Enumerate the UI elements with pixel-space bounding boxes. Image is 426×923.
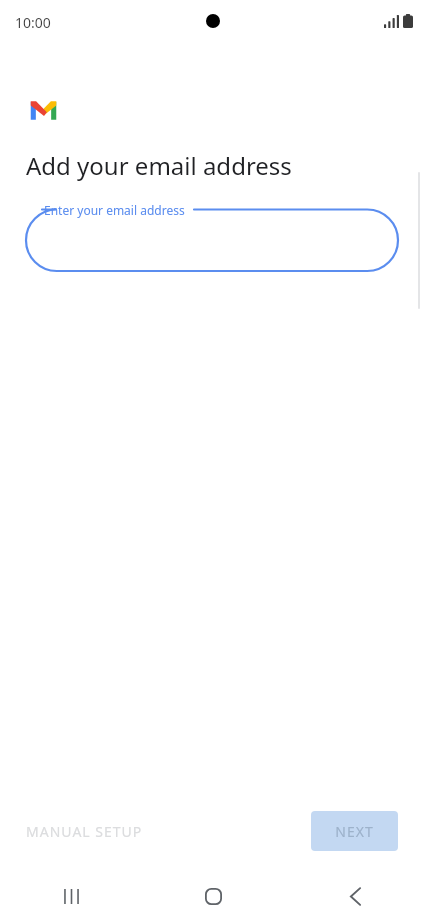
staticText: MANUAL SETUP: [26, 822, 143, 841]
button[interactable]: Recents: [0, 870, 142, 923]
button[interactable]: Back: [284, 870, 426, 923]
staticText: NEXT: [335, 822, 374, 841]
staticText: Add your email address: [26, 149, 292, 182]
button[interactable]: MANUAL SETUP: [12, 813, 157, 850]
button[interactable]: Enter your email address: [26, 203, 398, 271]
button[interactable]: Home: [142, 870, 284, 923]
staticText: 10:00: [15, 13, 51, 32]
staticText: Enter your email address: [44, 202, 185, 218]
button[interactable]: NEXT: [311, 811, 398, 851]
